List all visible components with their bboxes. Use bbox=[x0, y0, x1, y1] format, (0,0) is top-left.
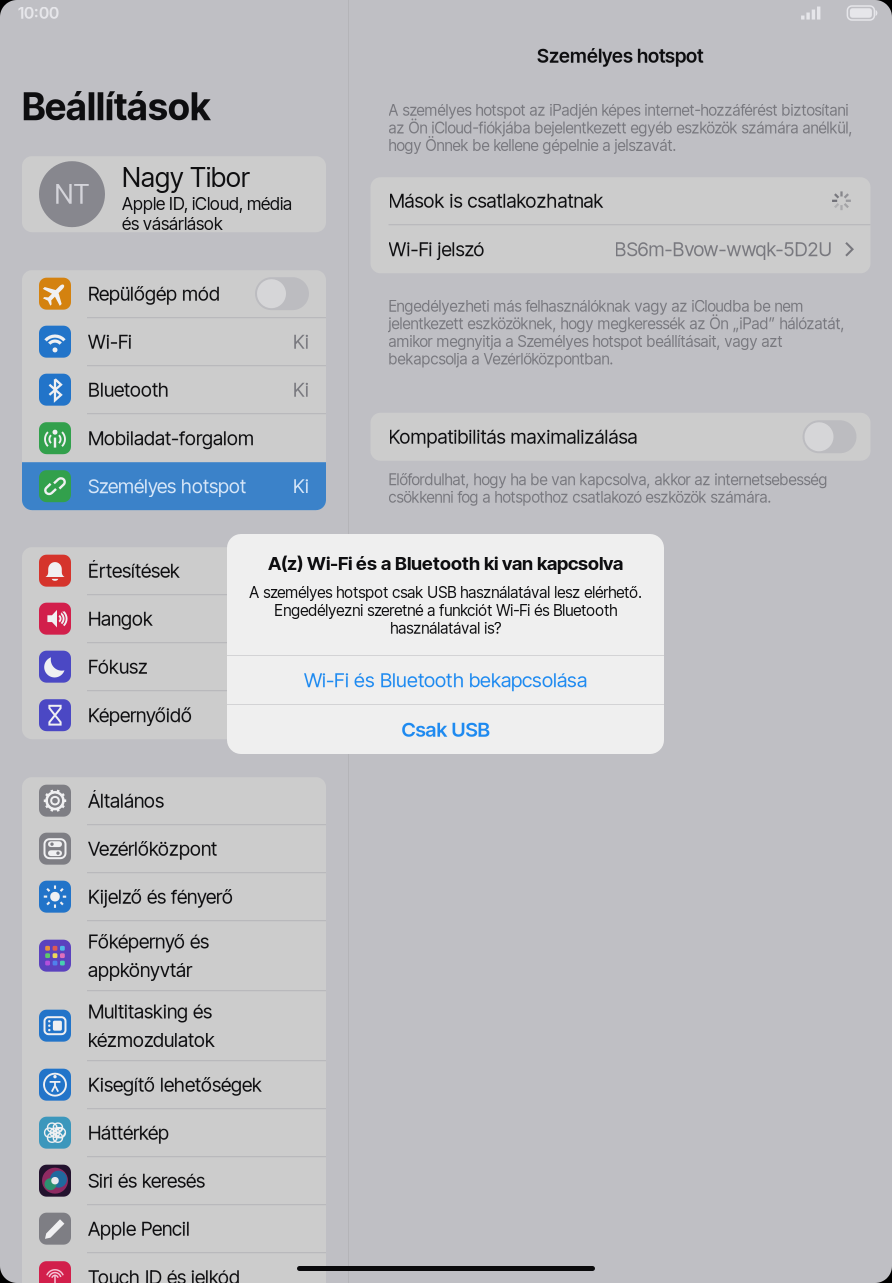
button[interactable]: Mobiladat-forgalom bbox=[22, 414, 326, 462]
button[interactable]: Fókusz bbox=[22, 643, 326, 691]
staticText: A személyes hotspot csak USB használatáv… bbox=[249, 584, 642, 637]
staticText: appkönyvtár bbox=[88, 958, 192, 982]
button[interactable]: Csak USB bbox=[227, 705, 664, 754]
staticText: Apple Pencil bbox=[88, 1217, 190, 1240]
button[interactable]: Képernyőidő bbox=[22, 691, 326, 739]
staticText: Értesítések bbox=[88, 559, 180, 582]
button[interactable]: Repülőgép mód bbox=[22, 270, 326, 318]
staticText: és vásárlások bbox=[122, 213, 223, 234]
staticText: Nagy Tibor bbox=[122, 161, 250, 193]
staticText: Vezérlőközpont bbox=[88, 837, 217, 860]
button[interactable]: Touch ID és jelkód bbox=[22, 1253, 326, 1283]
button[interactable]: Wi-Fi és Bluetooth bekapcsolása bbox=[227, 656, 664, 704]
staticText: A(z) Wi-Fi és a Bluetooth ki van kapcsol… bbox=[268, 552, 623, 575]
button[interactable]: Hangok bbox=[22, 595, 326, 643]
button[interactable]: Wi-Fi jelszó bbox=[370, 225, 870, 273]
staticText: Hangok bbox=[88, 607, 153, 630]
button[interactable]: Apple Pencil bbox=[22, 1205, 326, 1253]
button[interactable]: Siri és keresés bbox=[22, 1157, 326, 1205]
staticText: Apple ID, iCloud, média bbox=[122, 193, 292, 214]
button[interactable]: Általános bbox=[22, 777, 326, 825]
button[interactable]: Háttérkép bbox=[22, 1109, 326, 1157]
staticText: Multitasking és bbox=[88, 1000, 212, 1023]
staticText: Általános bbox=[88, 789, 164, 812]
button[interactable]: Személyes hotspot bbox=[22, 462, 326, 510]
staticText: Kisegítő lehetőségek bbox=[88, 1073, 262, 1096]
staticText: Engedélyezheti más felhasználóknak vagy … bbox=[388, 297, 844, 368]
staticText: Touch ID és jelkód bbox=[88, 1265, 240, 1283]
staticText: Wi-Fi és Bluetooth bekapcsolása bbox=[304, 668, 587, 692]
staticText: Képernyőidő bbox=[88, 703, 192, 727]
button[interactable]: Wi-Fi bbox=[22, 318, 326, 366]
staticText: Személyes hotspot bbox=[537, 44, 704, 67]
staticText: Személyes hotspot bbox=[88, 474, 246, 498]
staticText: Ki bbox=[293, 378, 309, 401]
staticText: Ki bbox=[293, 474, 309, 498]
staticText: Csak USB bbox=[401, 717, 489, 742]
button[interactable]: Bluetooth bbox=[22, 366, 326, 414]
staticText: Ki bbox=[293, 330, 309, 353]
button[interactable]: Vezérlőközpont bbox=[22, 825, 326, 873]
staticText: Mobiladat-forgalom bbox=[88, 426, 254, 450]
button[interactable]: Kijelző és fényerő bbox=[22, 873, 326, 921]
staticText: Beállítások bbox=[22, 84, 210, 129]
staticText: NT bbox=[54, 178, 89, 210]
button[interactable]: NT bbox=[22, 156, 326, 232]
button[interactable]: Multitasking és bbox=[22, 991, 326, 1061]
staticText: BS6m-Bvow-wwqk-5D2U bbox=[614, 238, 831, 261]
staticText: 10:00 bbox=[18, 3, 59, 23]
staticText: Előfordulhat, hogy ha be van kapcsolva, … bbox=[388, 471, 827, 506]
staticText: Kompatibilitás maximalizálása bbox=[388, 425, 637, 448]
staticText: kézmozdulatok bbox=[88, 1028, 215, 1052]
button[interactable]: Kisegítő lehetőségek bbox=[22, 1061, 326, 1109]
staticText: Mások is csatlakozhatnak bbox=[388, 189, 603, 212]
staticText: Kijelző és fényerő bbox=[88, 885, 233, 908]
staticText: Háttérkép bbox=[88, 1121, 169, 1144]
button[interactable]: Főképernyő és bbox=[22, 921, 326, 991]
staticText: Főképernyő és bbox=[88, 930, 209, 953]
staticText: Siri és keresés bbox=[88, 1169, 205, 1192]
staticText: A személyes hotspot az iPadjén képes int… bbox=[388, 101, 852, 154]
staticText: Fókusz bbox=[88, 655, 148, 678]
staticText: Repülőgép mód bbox=[88, 282, 220, 305]
staticText: Bluetooth bbox=[88, 378, 169, 401]
button[interactable]: Értesítések bbox=[22, 547, 326, 595]
staticText: Wi-Fi jelszó bbox=[388, 238, 484, 261]
staticText: Wi-Fi bbox=[88, 330, 132, 353]
